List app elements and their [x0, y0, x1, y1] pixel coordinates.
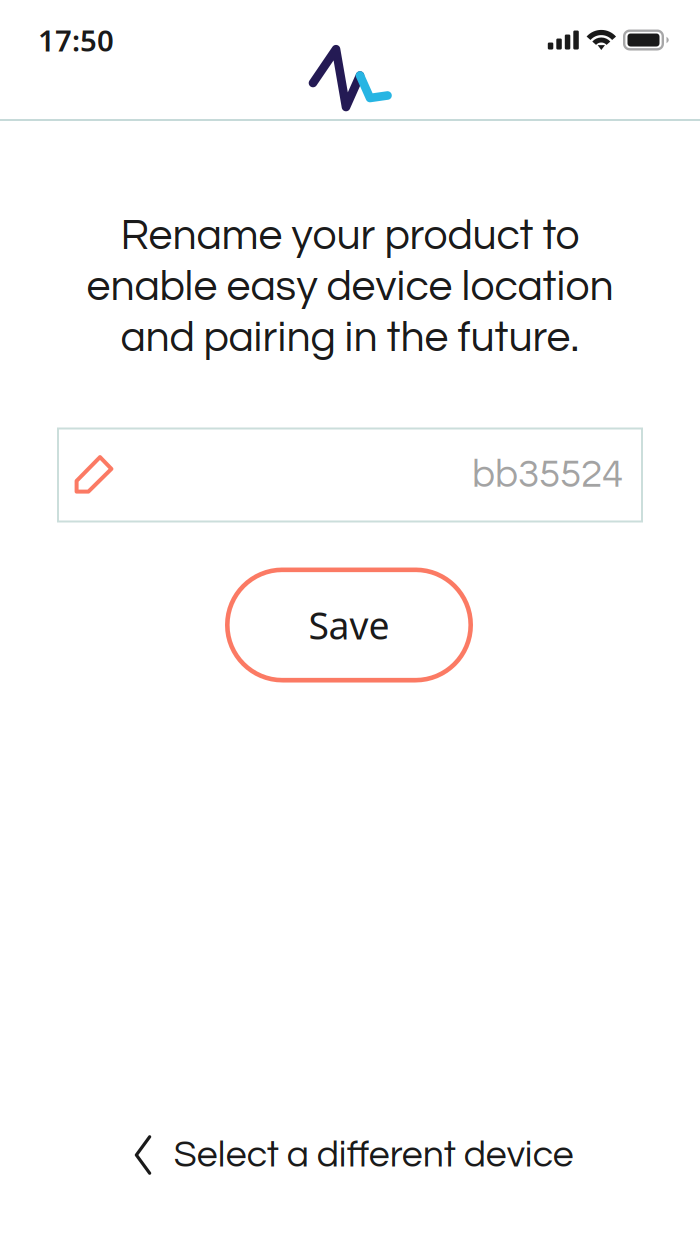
staticText: Select a different device [174, 1136, 574, 1174]
staticText: and pairing in the future. [120, 316, 579, 360]
button[interactable]: Save [225, 567, 473, 682]
staticText: 17:50 [38, 20, 114, 59]
staticText: Rename your product to [120, 214, 579, 258]
staticText: Save [308, 600, 389, 650]
staticText: enable easy device location [86, 265, 613, 309]
staticText: bb35524 [472, 455, 623, 495]
button[interactable]: Select a different device [112, 1119, 596, 1191]
